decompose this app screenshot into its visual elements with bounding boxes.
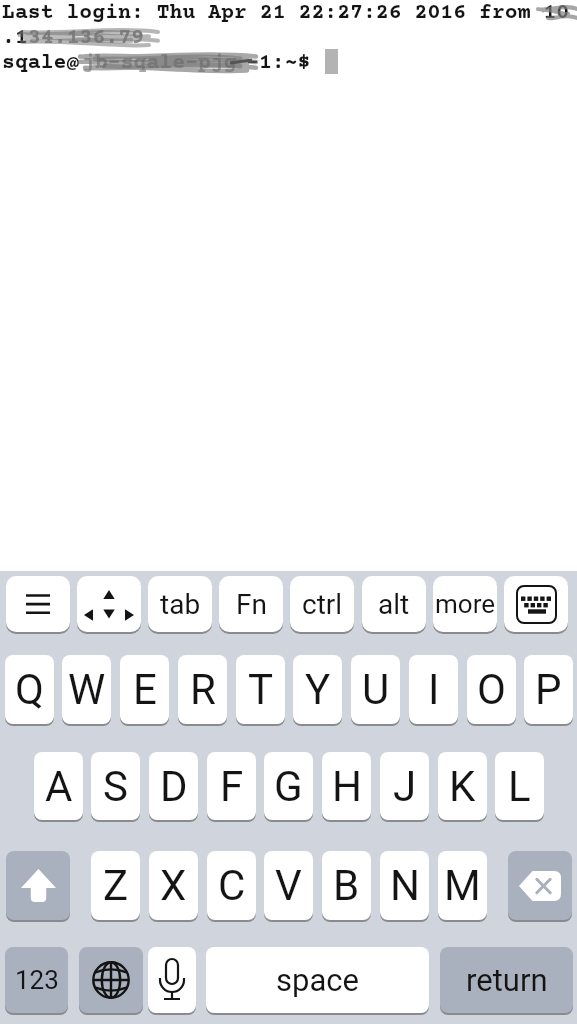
button[interactable]: S [91, 752, 140, 820]
button[interactable]: M [438, 851, 487, 920]
staticText: return [466, 962, 548, 998]
button[interactable]: N [380, 851, 429, 920]
staticText: S [103, 762, 128, 811]
staticText: ctrl [302, 588, 343, 621]
button[interactable]: X [149, 851, 198, 920]
staticText: T [248, 665, 274, 714]
button[interactable] [148, 947, 196, 1013]
staticText: B [333, 861, 360, 910]
staticText: H [332, 762, 362, 811]
button[interactable]: Y [293, 655, 342, 724]
button[interactable]: W [62, 655, 111, 724]
staticText: R [190, 665, 216, 714]
staticText: alt [378, 588, 410, 621]
staticText: F [220, 762, 244, 811]
button[interactable]: Z [91, 851, 140, 920]
staticText: A [45, 762, 73, 811]
button[interactable]: G [264, 752, 313, 820]
staticText: sqale@ [2, 51, 80, 75]
staticText: Q [15, 665, 44, 714]
staticText: jb-sqale-pjg [82, 51, 237, 75]
staticText: space [276, 962, 359, 998]
staticText: G [274, 762, 303, 811]
button[interactable]: B [322, 851, 371, 920]
button[interactable]: K [438, 752, 487, 820]
button[interactable] [504, 576, 568, 632]
button[interactable]: T [236, 655, 285, 724]
button[interactable]: R [178, 655, 227, 724]
button[interactable]: alt [362, 576, 426, 632]
button[interactable]: D [149, 752, 198, 820]
staticText: more [435, 589, 495, 619]
staticText: X [160, 861, 187, 910]
button[interactable]: J [380, 752, 429, 820]
staticText: Last login: Thu Apr 21 22:27:26 2016 fro… [2, 1, 570, 25]
button[interactable] [77, 576, 141, 632]
button[interactable]: ctrl [290, 576, 354, 632]
button[interactable]: U [351, 655, 400, 724]
button[interactable]: A [34, 752, 83, 820]
button[interactable]: Fn [219, 576, 283, 632]
staticText: tab [160, 588, 201, 621]
button[interactable]: 123 [5, 947, 68, 1013]
staticText: N [390, 861, 420, 910]
staticText: L [508, 762, 531, 811]
staticText: -1:~$ [246, 51, 311, 75]
staticText: .1 [2, 26, 28, 50]
staticText: 123 [15, 965, 59, 995]
button[interactable]: Q [5, 655, 54, 724]
button[interactable]: P [524, 655, 573, 724]
staticText: W [68, 665, 106, 714]
staticText: I [428, 665, 440, 714]
button[interactable]: V [264, 851, 313, 920]
button[interactable] [79, 947, 143, 1013]
button[interactable]: tab [148, 576, 212, 632]
staticText: Z [103, 861, 129, 910]
button[interactable]: F [207, 752, 256, 820]
button[interactable]: L [495, 752, 544, 820]
staticText: D [160, 762, 188, 811]
staticText: J [393, 762, 417, 811]
staticText: U [362, 665, 390, 714]
button[interactable]: I [409, 655, 458, 724]
staticText: 34.136.79 [28, 26, 145, 50]
button[interactable]: E [120, 655, 169, 724]
button[interactable] [6, 851, 70, 920]
staticText: C [218, 861, 246, 910]
button[interactable]: return [440, 947, 573, 1013]
staticText: K [449, 762, 476, 811]
button[interactable]: C [207, 851, 256, 920]
button[interactable] [6, 576, 70, 632]
button[interactable] [508, 851, 572, 920]
button[interactable]: space [206, 947, 429, 1013]
button[interactable]: more [433, 576, 497, 632]
staticText: Fn [236, 588, 267, 621]
staticText: M [444, 861, 481, 910]
button[interactable]: H [322, 752, 371, 820]
staticText: E [133, 665, 157, 714]
staticText: Y [305, 665, 331, 714]
staticText: O [477, 665, 506, 714]
button[interactable]: O [467, 655, 516, 724]
staticText: V [275, 861, 302, 910]
staticText: P [535, 665, 562, 714]
